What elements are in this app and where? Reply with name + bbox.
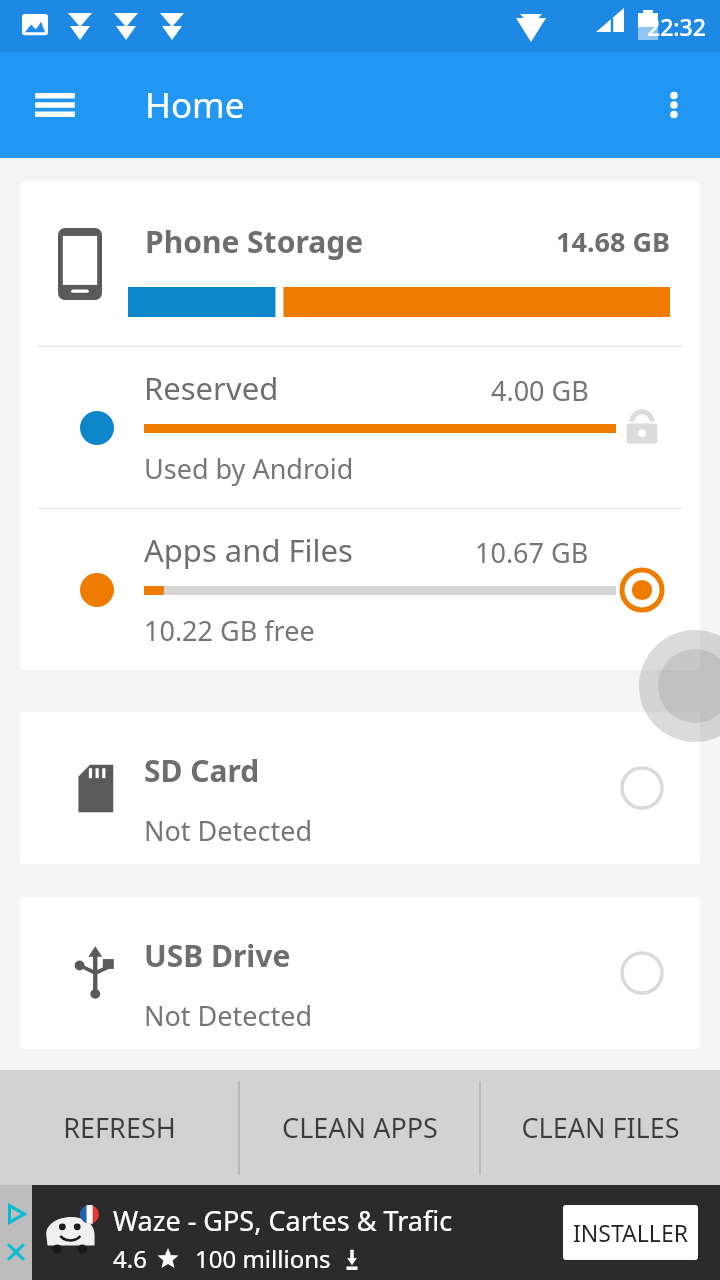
staticText: Phone Storage [145,221,364,262]
button[interactable]: REFRESH [0,1070,238,1185]
button[interactable]: Floating shortcut [639,630,720,742]
button[interactable]: CLEAN APPS [240,1070,479,1185]
staticText: 10.22 GB free [144,612,315,649]
staticText: 4.00 GB [491,372,589,409]
button[interactable]: CLEAN FILES [481,1070,720,1185]
button[interactable]: USB Drive [20,897,700,1049]
button[interactable]: Select USB Drive [614,945,670,1001]
staticText: 14.68 GB [556,223,670,260]
staticText: Used by Android [144,450,354,487]
button[interactable]: Locked [614,400,670,456]
button[interactable]: SD Card [20,712,700,864]
staticText: 22:32 [647,11,706,42]
button[interactable]: INSTALLER [563,1205,698,1260]
button[interactable]: More options [644,75,704,135]
staticText: 100 millions [195,1242,331,1275]
staticText: INSTALLER [573,1217,688,1248]
button[interactable]: Reserved [20,347,700,508]
button[interactable]: Selected [614,562,670,618]
staticText: USB Drive [144,935,291,976]
staticText: CLEAN FILES [521,1109,680,1146]
staticText: SD Card [144,750,260,791]
button[interactable]: Apps and Files [20,509,700,670]
staticText: 10.67 GB [475,534,589,571]
button[interactable]: Open navigation menu [22,72,88,138]
button[interactable]: Select SD Card [614,760,670,816]
staticText: Apps and Files [144,529,353,571]
staticText: Home [145,81,245,129]
staticText: Not Detected [144,997,313,1034]
staticText: Reserved [144,367,279,409]
staticText: Waze - GPS, Cartes & Trafic [113,1202,453,1239]
staticText: CLEAN APPS [282,1109,438,1146]
staticText: Not Detected [144,812,313,849]
button[interactable]: Ad choices [0,1185,32,1280]
staticText: 4.6 [113,1242,147,1275]
button[interactable]: Phone Storage [20,181,700,346]
staticText: REFRESH [63,1109,176,1146]
